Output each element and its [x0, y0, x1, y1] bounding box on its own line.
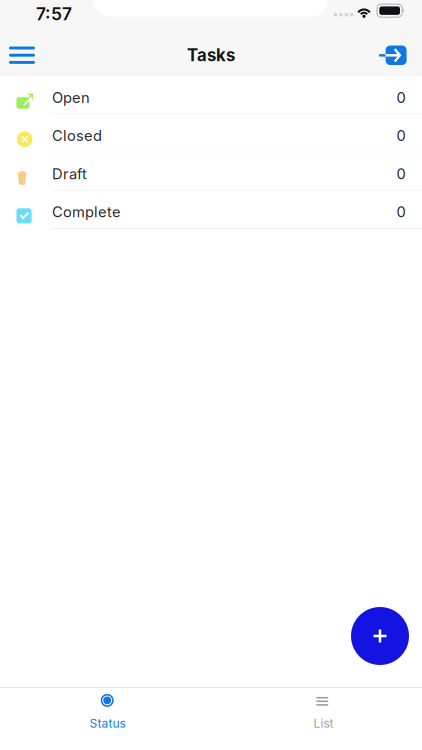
button[interactable]: Menu [0, 34, 44, 76]
button[interactable]: Draft [0, 153, 422, 191]
button[interactable]: List [211, 688, 422, 750]
button[interactable]: Status [0, 688, 211, 750]
button[interactable]: Open [0, 76, 422, 114]
staticText: 7:57 [36, 3, 72, 24]
staticText: 0 [396, 127, 405, 145]
button[interactable]: Add [351, 607, 409, 665]
button[interactable]: Sign in [371, 34, 415, 76]
staticText: 0 [396, 89, 405, 106]
staticText: Status [89, 716, 125, 731]
staticText: Complete [52, 203, 121, 221]
staticText: Draft [52, 165, 87, 183]
staticText: List [313, 716, 333, 731]
button[interactable]: Closed [0, 114, 422, 153]
staticText: 0 [396, 203, 405, 221]
staticText: Open [52, 89, 90, 106]
staticText: Tasks [187, 45, 235, 65]
staticText: 0 [396, 165, 405, 183]
button[interactable]: Complete [0, 191, 422, 229]
staticText: Closed [52, 127, 102, 145]
